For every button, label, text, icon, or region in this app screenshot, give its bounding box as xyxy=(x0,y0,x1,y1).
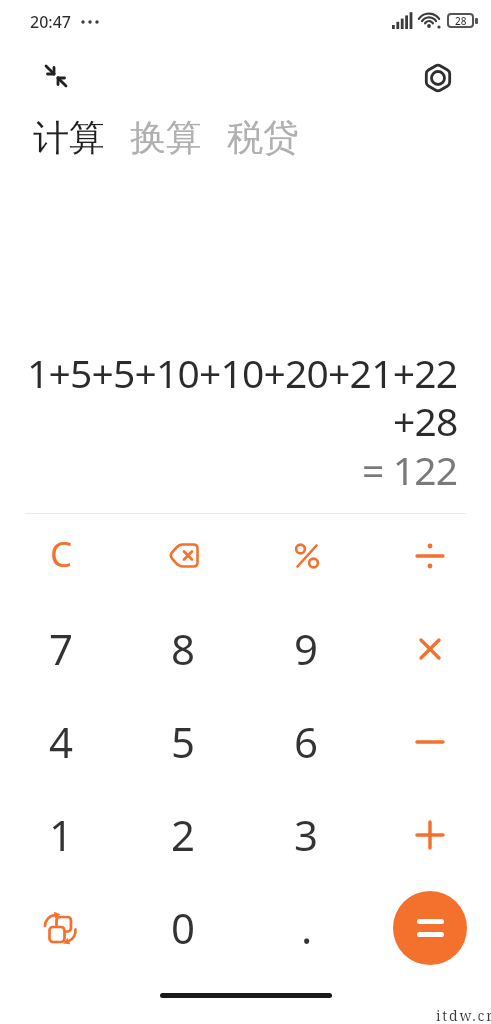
button[interactable] xyxy=(368,509,491,602)
button[interactable]: 9 xyxy=(245,602,368,695)
staticText: 1+5+5+10+10+20+21+22 xyxy=(27,346,458,399)
button[interactable]: 3 xyxy=(245,788,368,881)
staticText: 20:47 xyxy=(30,11,71,33)
button[interactable]: 换算 xyxy=(130,115,202,160)
button[interactable] xyxy=(368,695,491,788)
staticText: 9 xyxy=(294,620,319,677)
button[interactable] xyxy=(421,61,455,95)
button[interactable]: 1 xyxy=(0,788,122,881)
staticText: 1 xyxy=(49,806,74,863)
button[interactable] xyxy=(245,509,368,602)
staticText: itdw.cr xyxy=(436,1006,491,1024)
staticText: +28 xyxy=(393,394,458,447)
button[interactable]: 计算 xyxy=(33,115,105,160)
button[interactable] xyxy=(0,881,122,974)
staticText: 28 xyxy=(455,14,467,28)
button[interactable]: C xyxy=(0,509,122,602)
button[interactable] xyxy=(40,58,80,98)
button[interactable] xyxy=(122,509,245,602)
staticText: 7 xyxy=(49,620,74,677)
staticText: . xyxy=(301,899,313,956)
button[interactable] xyxy=(368,788,491,881)
button[interactable]: 0 xyxy=(122,881,245,974)
staticText: 6 xyxy=(294,713,319,770)
staticText: 4 xyxy=(49,713,74,770)
button[interactable]: 5 xyxy=(122,695,245,788)
button[interactable] xyxy=(368,602,491,695)
staticText: C xyxy=(50,530,73,578)
staticText: = 122 xyxy=(362,443,458,496)
button[interactable]: 2 xyxy=(122,788,245,881)
staticText: 0 xyxy=(171,899,196,956)
button[interactable]: 税贷 xyxy=(227,115,299,160)
button[interactable]: 8 xyxy=(122,602,245,695)
button[interactable]: 4 xyxy=(0,695,122,788)
button[interactable]: 7 xyxy=(0,602,122,695)
staticText: 8 xyxy=(171,620,196,677)
button[interactable]: . xyxy=(245,881,368,974)
staticText: 3 xyxy=(294,806,319,863)
staticText: 5 xyxy=(171,713,196,770)
button[interactable]: 6 xyxy=(245,695,368,788)
staticText: 2 xyxy=(171,806,196,863)
button[interactable] xyxy=(368,881,491,974)
